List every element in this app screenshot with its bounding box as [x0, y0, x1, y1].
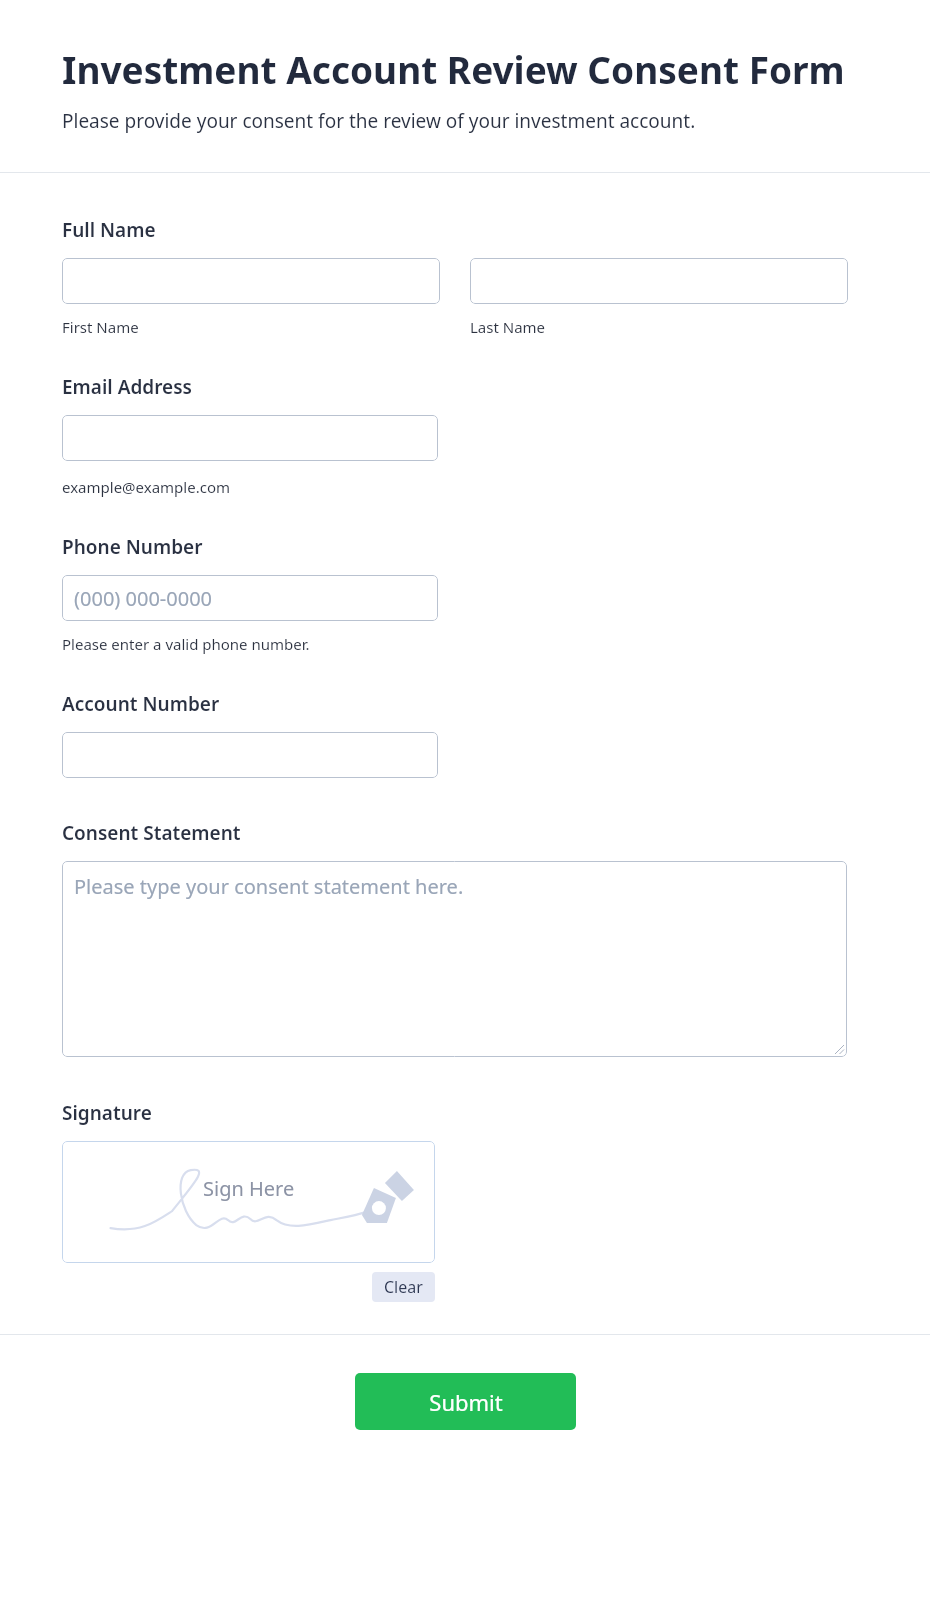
button[interactable]: (000) 000-0000 — [62, 575, 438, 621]
staticText: example@example.com — [62, 477, 230, 497]
staticText: Investment Account Review Consent Form — [62, 44, 845, 94]
button[interactable] — [62, 415, 438, 461]
staticText: Account Number — [62, 691, 220, 717]
button[interactable] — [62, 732, 438, 778]
staticText: Last Name — [470, 317, 546, 337]
button[interactable]: Clear — [372, 1272, 435, 1302]
staticText: Please provide your consent for the revi… — [62, 108, 696, 134]
staticText: Please enter a valid phone number. — [62, 634, 310, 654]
staticText: Sign Here — [203, 1175, 295, 1202]
staticText: Phone Number — [62, 534, 203, 560]
staticText: Clear — [384, 1276, 423, 1298]
staticText: Signature — [62, 1100, 152, 1126]
staticText: Email Address — [62, 374, 192, 400]
button[interactable] — [62, 258, 440, 304]
staticText: Submit — [429, 1387, 503, 1417]
staticText: Consent Statement — [62, 820, 241, 846]
button[interactable]: Please type your consent statement here. — [62, 861, 847, 1057]
staticText: First Name — [62, 317, 139, 337]
button[interactable]: Signature pad, sign here — [62, 1141, 435, 1263]
staticText: (000) 000-0000 — [74, 585, 213, 612]
button[interactable]: Submit — [355, 1373, 576, 1430]
button[interactable] — [470, 258, 848, 304]
staticText: Full Name — [62, 217, 156, 243]
staticText: Please type your consent statement here. — [74, 873, 464, 900]
